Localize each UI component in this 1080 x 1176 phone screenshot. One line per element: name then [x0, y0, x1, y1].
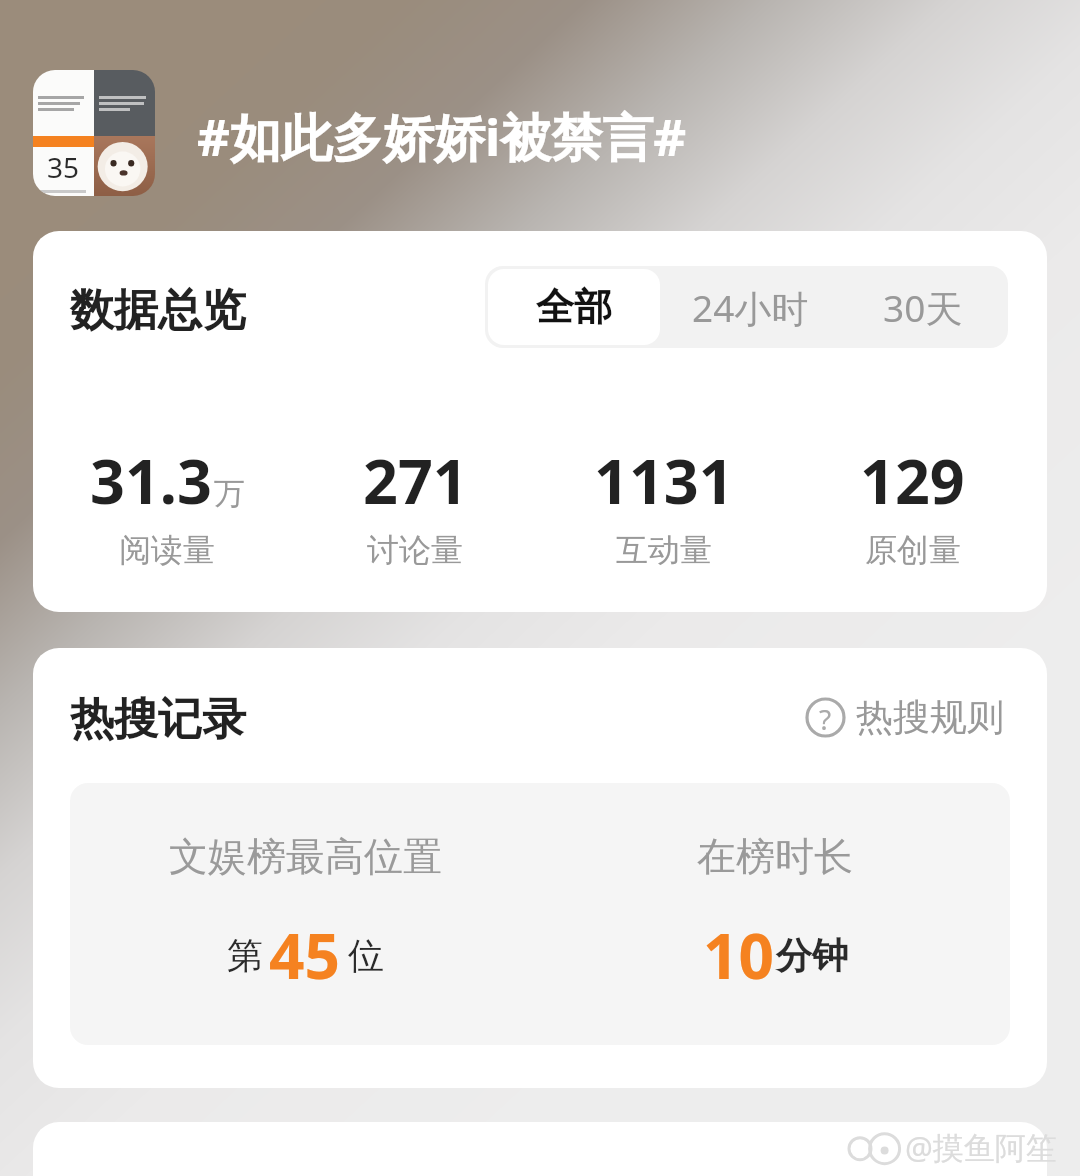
staticText: #如此多娇娇i被禁言#: [197, 101, 687, 171]
staticText: 文娱榜最高位置: [169, 832, 442, 881]
staticText: ?: [819, 700, 832, 738]
button[interactable]: 271: [291, 439, 539, 570]
button[interactable]: 话题配图: [33, 70, 155, 196]
button[interactable]: 129: [788, 439, 1037, 570]
other: 热搜规则说明: [805, 697, 846, 738]
staticText: 分钟: [776, 933, 848, 978]
staticText: 数据总览: [70, 283, 246, 338]
button[interactable]: 热搜规则说明: [805, 694, 1004, 741]
button[interactable]: 文娱榜最高位置: [70, 783, 540, 1045]
staticText: 万: [214, 474, 245, 513]
staticText: 1131: [594, 439, 734, 522]
staticText: 35: [47, 148, 80, 186]
staticText: 原创量: [865, 530, 961, 570]
staticText: 第: [227, 933, 263, 978]
staticText: 热搜规则: [856, 694, 1004, 741]
staticText: 热搜记录: [70, 692, 246, 747]
staticText: 10: [703, 913, 774, 997]
staticText: 互动量: [616, 530, 712, 570]
staticText: 在榜时长: [697, 832, 853, 881]
staticText: 讨论量: [367, 530, 463, 570]
button[interactable]: 1131: [539, 439, 788, 570]
staticText: 271: [363, 439, 468, 522]
button[interactable]: 全部: [488, 269, 660, 345]
staticText: 30天: [883, 282, 963, 333]
staticText: 位: [348, 933, 384, 978]
staticText: @摸鱼阿笙: [905, 1126, 1057, 1168]
button[interactable]: 31.3: [43, 439, 291, 570]
staticText: 129: [860, 439, 965, 522]
button[interactable]: 30天: [838, 266, 1008, 348]
staticText: 31.3: [90, 439, 212, 522]
staticText: 全部: [536, 283, 612, 331]
staticText: 阅读量: [119, 530, 215, 570]
staticText: 24小时: [692, 282, 809, 333]
staticText: 45: [269, 913, 340, 997]
button[interactable]: 24小时: [663, 266, 838, 348]
button[interactable]: 在榜时长: [540, 783, 1010, 1045]
